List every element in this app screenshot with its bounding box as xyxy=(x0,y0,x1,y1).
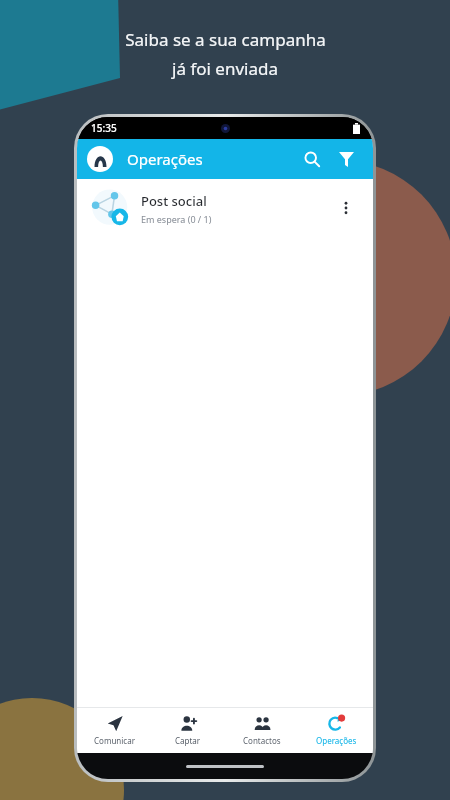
button[interactable]: Comunicar xyxy=(77,707,151,753)
staticText: Post social xyxy=(141,192,207,210)
staticText: Captar xyxy=(175,735,201,746)
staticText: 15:35 xyxy=(91,121,117,135)
button[interactable]: App logo xyxy=(87,146,113,172)
button[interactable]: Operações xyxy=(299,707,373,753)
staticText: Operações xyxy=(127,149,203,169)
staticText: Saiba se a sua campanha xyxy=(125,28,326,51)
staticText: já foi enviada xyxy=(172,57,278,80)
button[interactable]: Contactos xyxy=(225,707,299,753)
staticText: Contactos xyxy=(243,735,281,746)
staticText: Comunicar xyxy=(94,735,135,746)
button[interactable]: Filter xyxy=(329,142,363,176)
button[interactable]: Search xyxy=(295,142,329,176)
staticText: Operações xyxy=(316,735,357,746)
button[interactable]: Post social xyxy=(77,179,373,237)
button[interactable]: More options xyxy=(331,193,361,223)
staticText: Em espera (0 / 1) xyxy=(141,213,212,225)
button[interactable]: Captar xyxy=(151,707,225,753)
